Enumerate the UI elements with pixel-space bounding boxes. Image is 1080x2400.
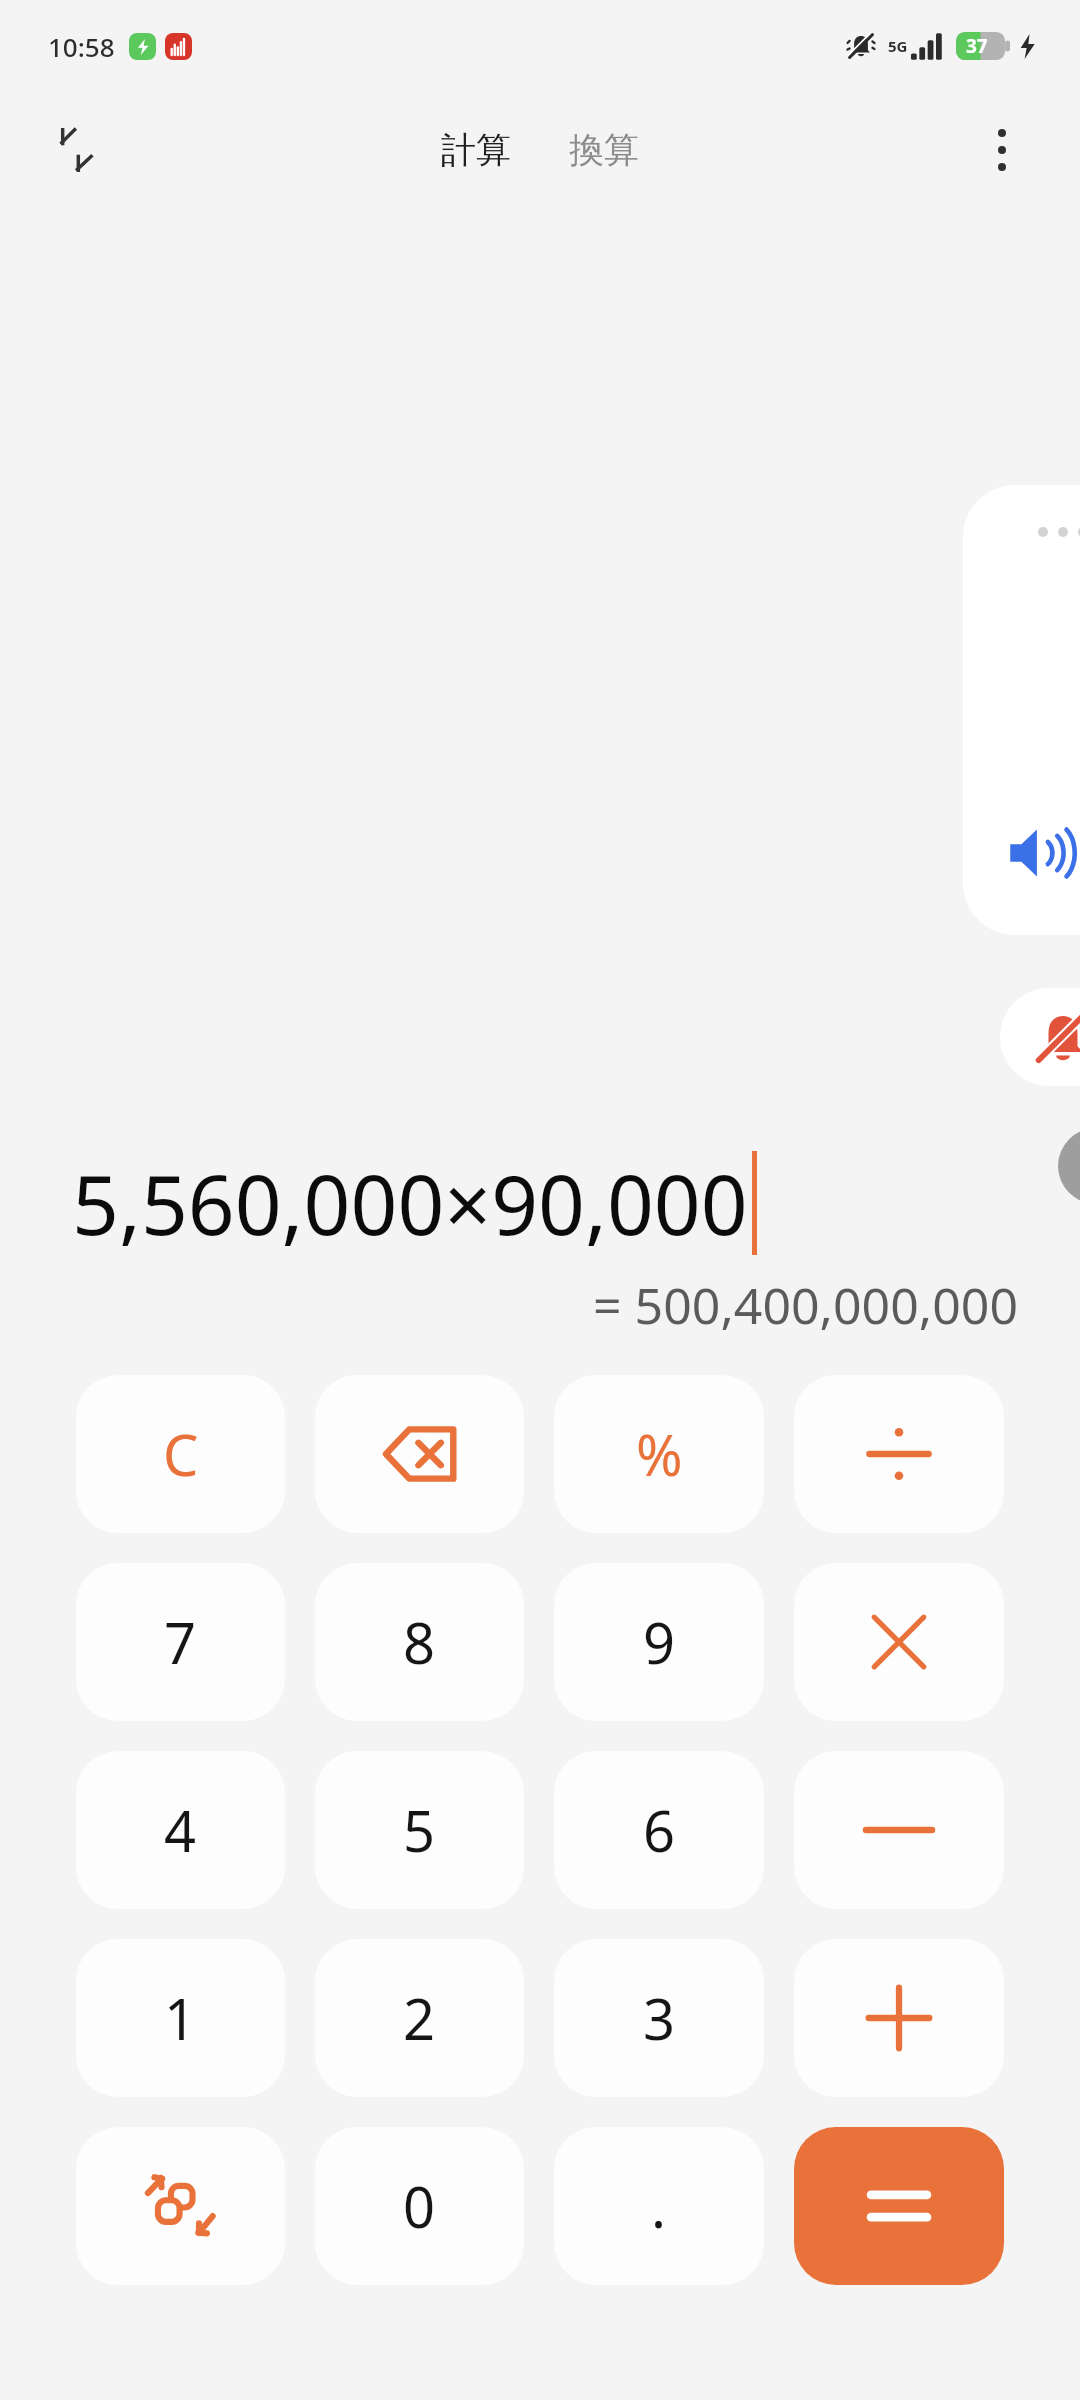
staticText: 1 <box>164 1980 197 2056</box>
button[interactable]: Plus <box>794 1939 1004 2097</box>
button[interactable]: Convert <box>76 2127 285 2285</box>
button[interactable]: 4 <box>76 1751 285 1909</box>
button[interactable]: 9 <box>554 1563 764 1721</box>
button[interactable]: 8 <box>315 1563 524 1721</box>
button[interactable]: Divide <box>794 1375 1004 1533</box>
button[interactable]: Minus <box>794 1751 1004 1909</box>
staticText: 5 <box>403 1792 436 1868</box>
staticText: 換算 <box>569 128 639 172</box>
staticText: 37 <box>966 33 988 59</box>
staticText: 5,560,000×90,000 <box>72 1147 748 1259</box>
staticText: 2 <box>403 1980 436 2056</box>
staticText: 8 <box>403 1604 436 1680</box>
button[interactable]: 5 <box>315 1751 524 1909</box>
staticText: 0 <box>403 2168 436 2244</box>
staticText: 計算 <box>441 128 511 172</box>
button[interactable]: . <box>554 2127 764 2285</box>
button[interactable]: Collapse <box>40 108 124 192</box>
staticText: C <box>163 1416 199 1492</box>
button[interactable]: Floating panel <box>963 485 1080 935</box>
staticText: . <box>651 2168 667 2244</box>
button[interactable]: C <box>76 1375 285 1533</box>
button[interactable]: 7 <box>76 1563 285 1721</box>
button[interactable]: 6 <box>554 1751 764 1909</box>
staticText: % <box>636 1416 683 1492</box>
button[interactable]: Backspace <box>315 1375 524 1533</box>
button[interactable]: % <box>554 1375 764 1533</box>
staticText: 6 <box>643 1792 676 1868</box>
button[interactable]: 0 <box>315 2127 524 2285</box>
staticText: 7 <box>164 1604 197 1680</box>
staticText: = 500,400,000,000 <box>593 1271 1018 1339</box>
button[interactable]: Mute <box>1000 988 1080 1086</box>
button[interactable]: 2 <box>315 1939 524 2097</box>
staticText: 10:58 <box>48 29 115 64</box>
button[interactable]: Equals <box>794 2127 1004 2285</box>
button[interactable]: 3 <box>554 1939 764 2097</box>
staticText: 4 <box>164 1792 197 1868</box>
button[interactable]: 1 <box>76 1939 285 2097</box>
button[interactable]: More options <box>960 108 1044 192</box>
button[interactable]: 換算 <box>559 120 649 180</box>
button[interactable]: 計算 <box>431 120 521 180</box>
staticText: 9 <box>643 1604 676 1680</box>
staticText: 3 <box>643 1980 676 2056</box>
staticText: 5G <box>888 36 908 56</box>
button[interactable]: Multiply <box>794 1563 1004 1721</box>
